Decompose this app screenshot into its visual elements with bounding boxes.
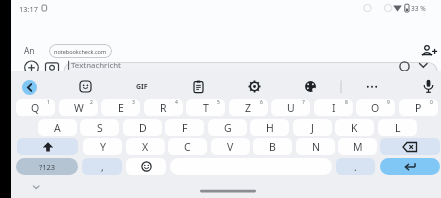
button[interactable]: V xyxy=(211,138,250,155)
button[interactable]: X xyxy=(126,138,165,155)
button[interactable]: GIF xyxy=(131,80,152,93)
staticText: . xyxy=(354,160,357,174)
button[interactable]: E xyxy=(101,99,140,116)
staticText: 8 xyxy=(345,99,348,106)
staticText: I xyxy=(332,101,336,115)
staticText: J xyxy=(311,121,314,135)
staticText: D xyxy=(139,121,147,135)
staticText: P xyxy=(415,101,422,115)
staticText: V xyxy=(227,140,234,154)
button[interactable]: T xyxy=(186,99,225,116)
staticText: H xyxy=(266,121,274,135)
button[interactable] xyxy=(29,181,43,194)
button[interactable] xyxy=(17,138,78,155)
staticText: N xyxy=(312,140,320,154)
staticText: B xyxy=(269,140,276,154)
staticText: 13:17 xyxy=(19,4,38,14)
button[interactable] xyxy=(380,158,440,175)
staticText: T xyxy=(203,101,209,115)
button[interactable] xyxy=(422,79,435,94)
button[interactable] xyxy=(79,80,92,93)
button[interactable] xyxy=(192,80,205,93)
staticText: 4 xyxy=(175,99,178,106)
staticText: 1 xyxy=(47,99,50,106)
button[interactable]: O xyxy=(356,99,395,116)
button[interactable]: U xyxy=(271,99,310,116)
staticText: W xyxy=(74,101,84,115)
staticText: Z xyxy=(245,101,252,115)
staticText: 7 xyxy=(302,99,305,106)
staticText: U xyxy=(287,101,295,115)
button[interactable]: J xyxy=(293,119,332,136)
button[interactable]: K xyxy=(335,119,374,136)
button[interactable]: notebookcheck.com xyxy=(49,44,112,58)
staticText: Textnachricht xyxy=(71,60,121,71)
staticText: 9 xyxy=(387,99,390,106)
staticText: O xyxy=(371,101,380,115)
button[interactable]: P xyxy=(399,99,438,116)
button[interactable]: Z xyxy=(229,99,268,116)
button[interactable]: F xyxy=(165,119,204,136)
button[interactable]: L xyxy=(378,119,417,136)
button[interactable]: B xyxy=(253,138,292,155)
button[interactable]: N xyxy=(296,138,335,155)
staticText: notebookcheck.com xyxy=(54,48,107,55)
button[interactable]: M xyxy=(338,138,377,155)
button[interactable]: W xyxy=(59,99,98,116)
button[interactable]: . xyxy=(336,158,375,175)
button[interactable]: R xyxy=(144,99,183,116)
staticText: C xyxy=(184,140,191,154)
button[interactable] xyxy=(304,80,317,93)
staticText: 0 xyxy=(430,99,433,106)
staticText: 2 xyxy=(90,99,93,106)
button[interactable]: S xyxy=(80,119,119,136)
button[interactable]: G xyxy=(208,119,247,136)
staticText: S xyxy=(97,121,103,135)
staticText: M xyxy=(353,140,363,154)
button[interactable] xyxy=(420,43,437,58)
staticText: L xyxy=(395,121,401,135)
staticText: A xyxy=(54,121,61,135)
staticText: G xyxy=(224,121,232,135)
staticText: R xyxy=(160,101,167,115)
button[interactable] xyxy=(126,158,166,175)
staticText: 3 xyxy=(132,99,135,106)
button[interactable]: A xyxy=(38,119,77,136)
staticText: X xyxy=(142,140,149,154)
staticText: Y xyxy=(100,140,106,154)
button[interactable]: I xyxy=(314,99,353,116)
button[interactable]: C xyxy=(168,138,207,155)
button[interactable] xyxy=(380,138,440,155)
staticText: 5 xyxy=(217,99,220,106)
staticText: ?123 xyxy=(39,162,56,172)
staticText: K xyxy=(351,121,358,135)
staticText: , xyxy=(101,160,104,174)
staticText: Q xyxy=(31,101,40,115)
button[interactable]: ?123 xyxy=(16,158,78,175)
button[interactable] xyxy=(22,80,37,95)
button[interactable]: D xyxy=(123,119,162,136)
staticText: E xyxy=(118,101,124,115)
button[interactable] xyxy=(365,80,379,93)
button[interactable]: Y xyxy=(83,138,122,155)
staticText: 33 % xyxy=(411,4,426,13)
staticText: GIF xyxy=(136,82,148,92)
button[interactable] xyxy=(248,80,261,93)
button[interactable]: Q xyxy=(16,99,55,116)
button[interactable]: H xyxy=(250,119,289,136)
button[interactable]: , xyxy=(82,158,122,175)
staticText: F xyxy=(182,121,188,135)
staticText: 6 xyxy=(260,99,263,106)
staticText: An xyxy=(24,45,35,56)
